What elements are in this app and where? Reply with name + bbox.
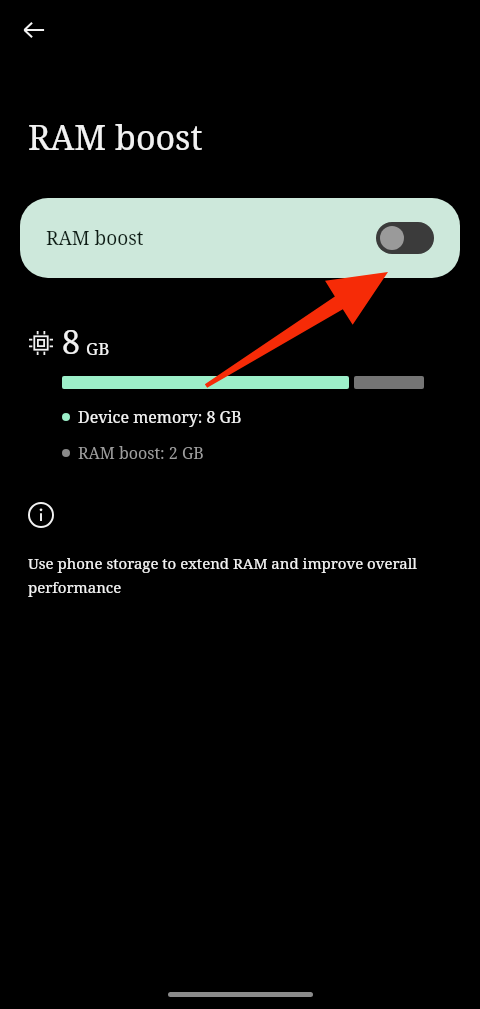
button[interactable]: Back (12, 8, 56, 52)
staticText: Device memory: 8 GB (78, 406, 242, 428)
staticText: RAM boost (46, 225, 144, 251)
staticText: GB (86, 337, 110, 360)
staticText: RAM boost (28, 114, 203, 160)
staticText: Use phone storage to extend RAM and impr… (28, 550, 448, 598)
staticText: RAM boost: 2 GB (78, 442, 204, 464)
button[interactable]: RAM boost (20, 198, 460, 278)
staticText: 8 (62, 320, 80, 364)
